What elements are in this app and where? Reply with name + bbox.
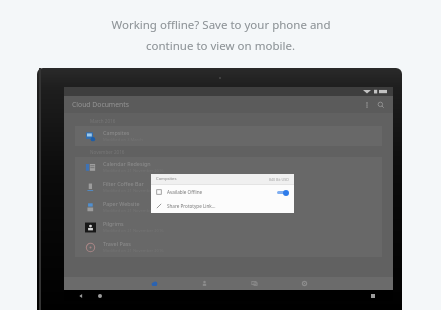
button[interactable]: Comments [246,277,262,290]
button[interactable]: Filter Coffee Bar [75,177,382,197]
button[interactable]: Recent apps [368,291,378,301]
button[interactable]: Campsites [75,126,382,146]
staticText: Campsites [103,129,130,136]
staticText: Available Offline [167,189,203,195]
button[interactable]: Available Offline [151,185,294,199]
staticText: 840 Bit USD [269,177,289,182]
button[interactable]: Search [374,98,388,112]
button[interactable]: Home [95,291,105,301]
button[interactable]: Travel Pass [75,237,382,257]
button[interactable]: Calendar Redesign [75,157,382,177]
button[interactable]: More options [360,98,374,112]
staticText: Filter Coffee Bar [103,180,144,187]
button[interactable]: People [196,277,212,290]
staticText: Share Prototype Link... [167,203,216,209]
button[interactable]: Settings [296,277,312,290]
staticText: Pilgrims [103,220,124,227]
staticText: Paper Website [103,200,140,207]
button[interactable]: Share Prototype Link... [151,199,294,212]
staticText: November 2016 [90,149,125,155]
staticText: Modified on 21 November 2016 [103,188,164,194]
staticText: Modified on 21 November 2016 [103,208,164,214]
staticText: Working offline? Save to your phone and [111,17,331,33]
button[interactable]: Pilgrims [75,217,382,237]
staticText: continue to view on mobile. [146,38,295,54]
button[interactable]: Paper Website [75,197,382,217]
staticText: Travel Pass [103,240,131,247]
button[interactable]: Cloud [146,277,162,290]
button[interactable]: Back [76,291,86,301]
staticText: Cloud Documents [72,100,129,109]
staticText: March 2016 [90,118,116,124]
staticText: Calendar Redesign [103,160,151,167]
staticText: Campsites [156,176,177,182]
